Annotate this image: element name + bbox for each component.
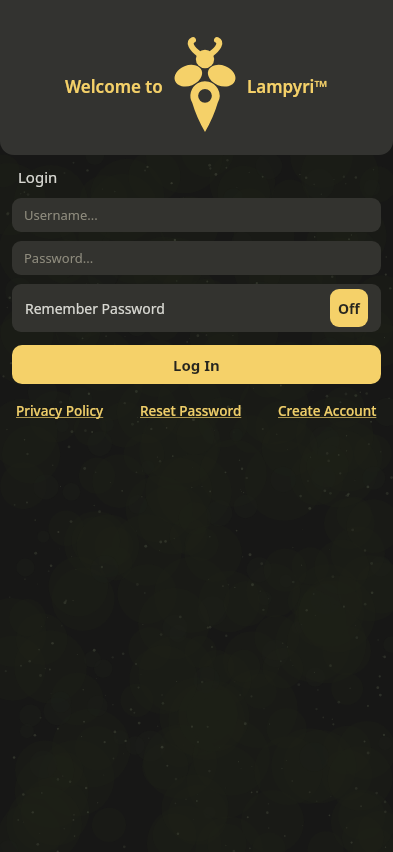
staticText: Privacy Policy bbox=[16, 402, 104, 420]
staticText: Remember Password bbox=[25, 299, 165, 318]
staticText: Welcome to bbox=[65, 75, 163, 98]
staticText: Reset Password bbox=[140, 402, 242, 420]
button[interactable]: Privacy Policy bbox=[16, 400, 104, 422]
staticText: Login bbox=[18, 167, 58, 187]
staticText: Off bbox=[338, 299, 360, 318]
button[interactable]: Remember Password bbox=[12, 284, 381, 332]
staticText: Create Account bbox=[278, 402, 377, 420]
button[interactable]: Password... bbox=[12, 241, 381, 275]
other: Lampyri firefly logo bbox=[171, 37, 239, 135]
staticText: Log In bbox=[173, 355, 220, 375]
staticText: Password... bbox=[24, 249, 94, 267]
button[interactable]: Log In bbox=[12, 345, 381, 384]
button[interactable]: Reset Password bbox=[140, 400, 242, 422]
button[interactable]: Create Account bbox=[278, 400, 377, 422]
button[interactable]: Off bbox=[330, 289, 368, 327]
staticText: Username... bbox=[24, 206, 98, 224]
button[interactable]: Username... bbox=[12, 198, 381, 232]
staticText: Lampyri™ bbox=[247, 75, 328, 98]
